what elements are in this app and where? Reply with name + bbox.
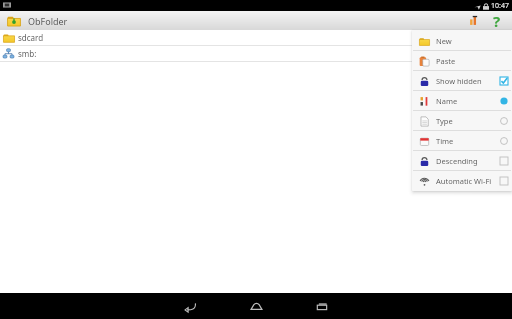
- button[interactable]: Descending: [413, 151, 511, 170]
- staticText: New: [436, 36, 452, 46]
- staticText: Descending: [436, 156, 478, 166]
- button[interactable]: Sort: [464, 11, 484, 30]
- button[interactable]: Time: [413, 131, 511, 150]
- staticText: Time: [436, 136, 454, 146]
- staticText: Type: [436, 116, 453, 126]
- staticText: sdcard: [18, 32, 44, 43]
- staticText: ?: [493, 11, 501, 30]
- staticText: ObFolder: [28, 15, 68, 27]
- button[interactable]: Name: [413, 91, 511, 110]
- button[interactable]: Type: [413, 111, 511, 130]
- staticText: Paste: [436, 56, 456, 66]
- button[interactable]: Recent apps: [302, 293, 342, 319]
- staticText: 10:47: [491, 1, 509, 11]
- staticText: smb:: [18, 48, 37, 59]
- button[interactable]: sdcard: [0, 30, 512, 45]
- button[interactable]: Back: [170, 293, 210, 319]
- staticText: Automatic Wi-Fi: [436, 176, 492, 186]
- staticText: Show hidden: [436, 76, 482, 86]
- button[interactable]: New: [413, 31, 511, 50]
- button[interactable]: Paste: [413, 51, 511, 70]
- staticText: Name: [436, 96, 458, 106]
- button[interactable]: smb:: [0, 46, 512, 61]
- button[interactable]: Automatic Wi-Fi: [413, 171, 511, 190]
- button[interactable]: Show hidden: [413, 71, 511, 90]
- button[interactable]: Help: [487, 11, 507, 30]
- button[interactable]: Home: [236, 293, 276, 319]
